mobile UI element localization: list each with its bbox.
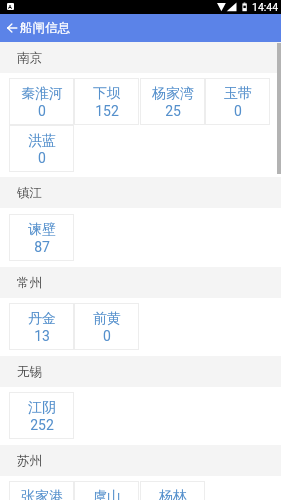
button[interactable]: 苏州 bbox=[0, 445, 281, 476]
button[interactable]: 南京 bbox=[0, 42, 281, 73]
staticText: 镇江 bbox=[17, 185, 42, 201]
staticText: 张家港 bbox=[21, 488, 63, 500]
staticText: 25 bbox=[165, 103, 181, 119]
staticText: 虞山 bbox=[93, 488, 121, 500]
button[interactable]: 无锡 bbox=[0, 356, 281, 387]
staticText: 13 bbox=[34, 328, 50, 344]
button[interactable]: Back bbox=[0, 14, 71, 42]
button[interactable]: 下坝 bbox=[74, 78, 139, 125]
button[interactable]: 丹金 bbox=[9, 303, 74, 350]
staticText: 玉带 bbox=[224, 85, 252, 103]
button[interactable]: 洪蓝 bbox=[9, 125, 74, 172]
button[interactable]: 常州 bbox=[0, 267, 281, 298]
staticText: 常州 bbox=[17, 275, 42, 291]
staticText: 0 bbox=[103, 328, 111, 344]
staticText: 14:44 bbox=[252, 1, 279, 13]
button[interactable]: 杨家湾 bbox=[140, 78, 205, 125]
staticText: 杨家湾 bbox=[152, 85, 194, 103]
button[interactable]: 谏壁 bbox=[9, 214, 74, 261]
staticText: A bbox=[8, 3, 13, 10]
staticText: 87 bbox=[34, 239, 50, 255]
staticText: 苏州 bbox=[17, 453, 42, 469]
button[interactable]: 杨林 bbox=[140, 481, 205, 500]
staticText: 秦淮河 bbox=[21, 85, 63, 103]
button[interactable]: 秦淮河 bbox=[9, 78, 74, 125]
button[interactable]: 玉带 bbox=[205, 78, 270, 125]
staticText: 江阴 bbox=[28, 399, 56, 417]
button[interactable]: 张家港 bbox=[9, 481, 74, 500]
staticText: 下坝 bbox=[93, 85, 121, 103]
button[interactable]: 虞山 bbox=[74, 481, 139, 500]
staticText: 前黄 bbox=[93, 310, 121, 328]
button[interactable]: 镇江 bbox=[0, 177, 281, 208]
staticText: 252 bbox=[30, 417, 54, 433]
staticText: 杨林 bbox=[159, 488, 187, 500]
staticText: 152 bbox=[95, 103, 119, 119]
staticText: 0 bbox=[38, 103, 46, 119]
other: Back bbox=[7, 14, 18, 42]
staticText: 0 bbox=[234, 103, 242, 119]
staticText: 0 bbox=[38, 150, 46, 166]
staticText: 丹金 bbox=[28, 310, 56, 328]
button[interactable]: 前黄 bbox=[74, 303, 139, 350]
button[interactable]: 江阴 bbox=[9, 392, 74, 439]
staticText: 洪蓝 bbox=[28, 132, 56, 150]
staticText: 南京 bbox=[17, 50, 42, 66]
staticText: 无锡 bbox=[17, 364, 42, 380]
staticText: 船闸信息 bbox=[20, 20, 71, 36]
staticText: 谏壁 bbox=[28, 221, 56, 239]
